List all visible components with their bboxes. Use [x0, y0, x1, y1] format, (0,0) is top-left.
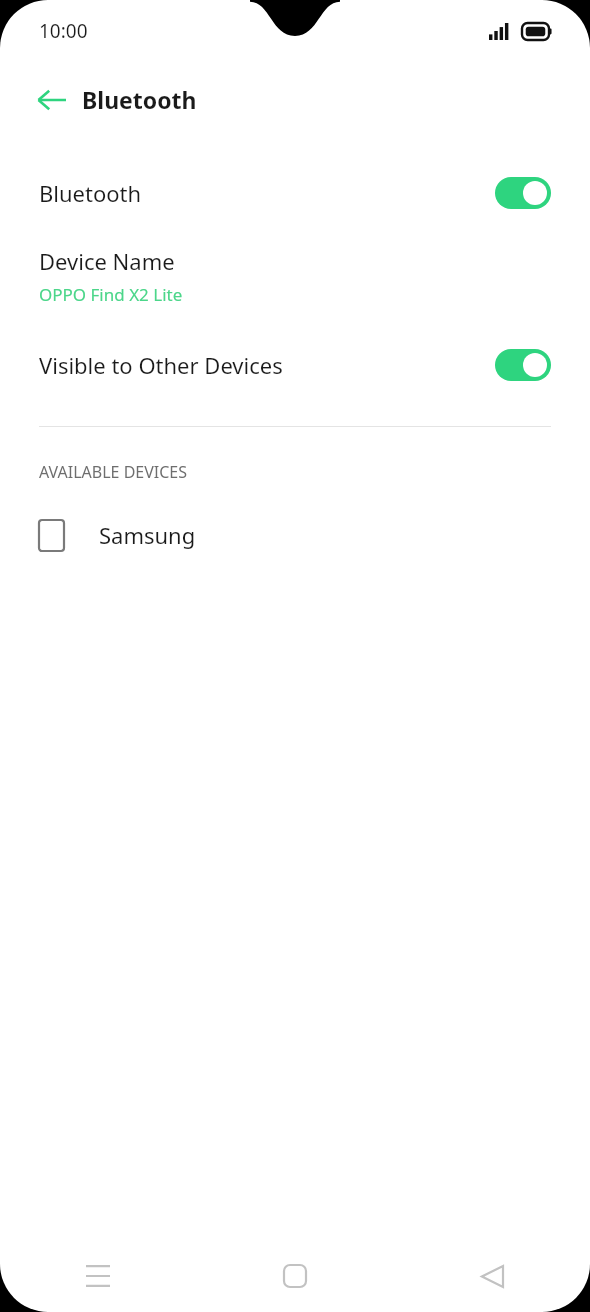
button[interactable]: Back — [26, 74, 78, 126]
button[interactable]: Toggle on — [495, 177, 551, 209]
button[interactable]: Device Name — [0, 242, 590, 310]
button[interactable]: Recent apps — [0, 1240, 196, 1312]
button[interactable]: Samsung — [0, 505, 590, 565]
staticText: Visible to Other Devices — [39, 350, 495, 380]
button[interactable]: Visible to Other Devices — [0, 333, 590, 397]
staticText: Bluetooth — [39, 178, 495, 208]
button[interactable]: Bluetooth — [0, 161, 590, 225]
staticText: Samsung — [99, 520, 196, 550]
staticText: Bluetooth — [82, 84, 197, 115]
staticText: AVAILABLE DEVICES — [39, 461, 188, 483]
button[interactable]: Toggle on — [495, 349, 551, 381]
staticText: 10:00 — [39, 18, 88, 44]
button[interactable]: Home — [196, 1240, 393, 1312]
staticText: Device Name — [39, 246, 175, 276]
button[interactable]: Back — [393, 1240, 590, 1312]
staticText: OPPO Find X2 Lite — [39, 283, 183, 306]
